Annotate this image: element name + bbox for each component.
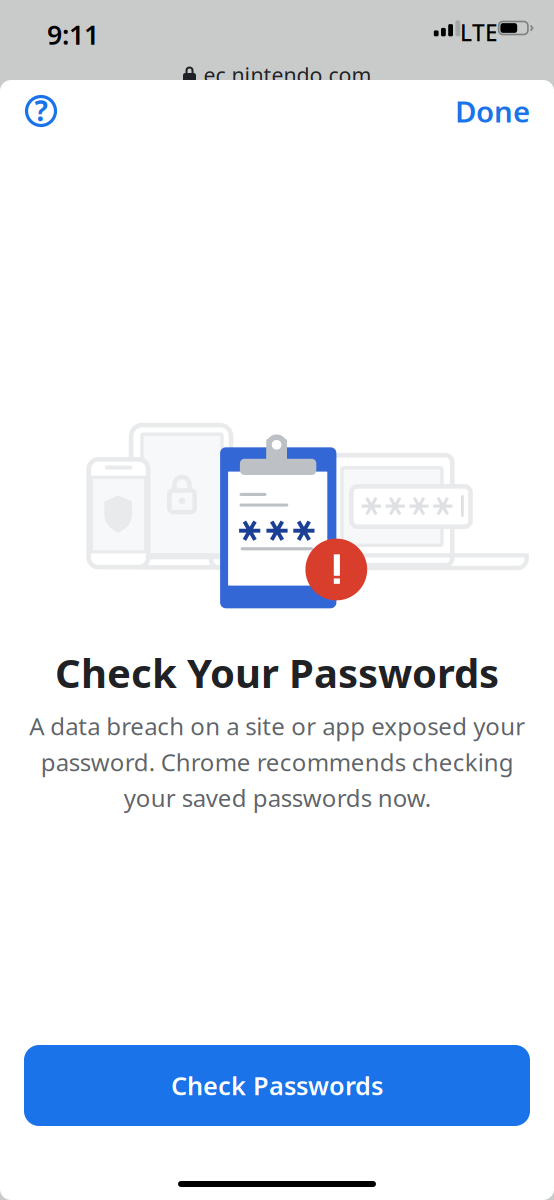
staticText: A data breach on a site or app exposed y…: [29, 710, 525, 814]
staticText: Check Passwords: [171, 1069, 383, 1102]
staticText: ?: [34, 92, 47, 129]
button[interactable]: Check Passwords: [24, 1045, 530, 1126]
staticText: Check Your Passwords: [55, 646, 499, 699]
staticText: 9:11: [47, 17, 99, 52]
staticText: LTE: [460, 17, 498, 47]
button[interactable]: Done: [447, 87, 538, 135]
button[interactable]: Help: [17, 87, 65, 135]
staticText: Done: [455, 91, 530, 130]
staticText: ec.nintendo.com: [203, 61, 371, 89]
